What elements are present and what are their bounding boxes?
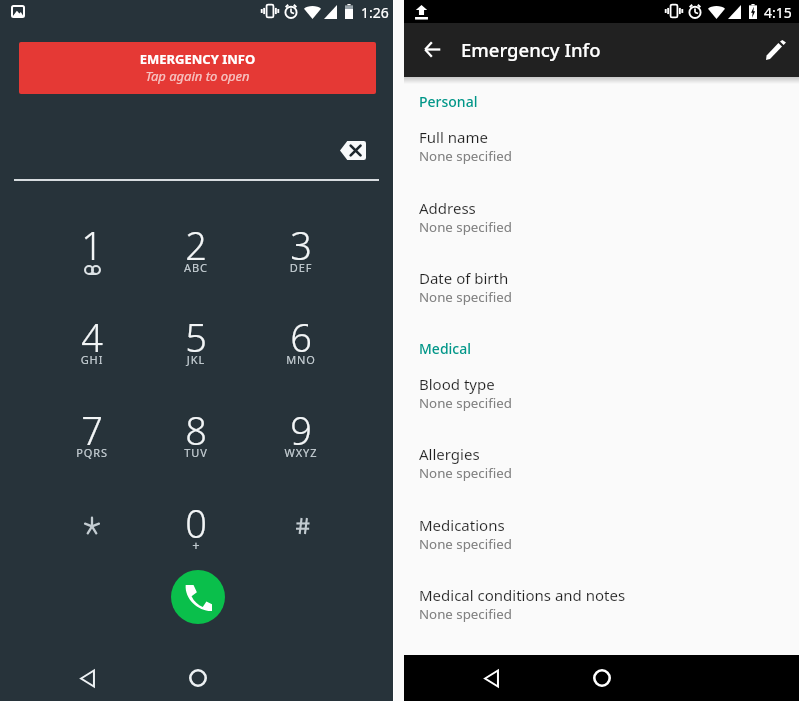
staticText: 0 (151, 497, 241, 549)
staticText: None specified (419, 218, 512, 236)
staticText: ABC (151, 260, 241, 275)
button[interactable]: 2 (151, 219, 241, 305)
staticText: 7 (47, 404, 137, 456)
button[interactable]: Medical conditions and notes (404, 585, 799, 645)
staticText: Date of birth (419, 268, 509, 288)
staticText: WXYZ (256, 445, 346, 460)
button[interactable]: Home (176, 656, 220, 700)
button[interactable]: Full name (404, 127, 799, 187)
staticText: Medications (419, 515, 505, 535)
button[interactable]: 4 (47, 311, 137, 397)
staticText: JKL (151, 352, 241, 367)
staticText: Emergency Info (461, 37, 601, 62)
staticText: Medical (419, 339, 472, 358)
button[interactable]: Star (47, 497, 137, 583)
staticText: 2 (151, 219, 241, 271)
button[interactable]: 8 (151, 404, 241, 490)
staticText: None specified (419, 464, 512, 482)
staticText: Personal (419, 92, 478, 111)
staticText: 1:26 (361, 3, 389, 22)
staticText: Full name (419, 127, 488, 147)
staticText: None specified (419, 535, 512, 553)
staticText: 4 (47, 311, 137, 363)
button[interactable]: Backspace (333, 130, 373, 170)
staticText: Tap again to open (19, 67, 376, 85)
staticText: + (151, 536, 241, 554)
button[interactable]: Back (469, 656, 513, 700)
button[interactable]: Allergies (404, 444, 799, 504)
button[interactable]: EMERGENCY INFO (19, 42, 376, 94)
staticText: Allergies (419, 444, 480, 464)
button[interactable]: Edit (754, 28, 798, 72)
staticText: 1 (47, 219, 137, 271)
staticText: None specified (419, 288, 512, 306)
staticText: DEF (256, 260, 346, 275)
button[interactable]: Back (65, 656, 109, 700)
button[interactable]: 1 (47, 219, 137, 305)
button[interactable]: Home (580, 656, 624, 700)
button[interactable]: 6 (256, 311, 346, 397)
staticText: None specified (419, 394, 512, 412)
staticText: 5 (151, 311, 241, 363)
button[interactable]: Medications (404, 515, 799, 575)
button[interactable]: 9 (256, 404, 346, 490)
staticText: 6 (256, 311, 346, 363)
button[interactable]: Pound (256, 497, 346, 583)
staticText: Address (419, 198, 476, 218)
staticText: None specified (419, 605, 512, 623)
staticText: PQRS (47, 445, 137, 460)
button[interactable]: 3 (256, 219, 346, 305)
staticText: Medical conditions and notes (419, 585, 626, 605)
staticText: GHI (47, 352, 137, 367)
staticText: None specified (419, 147, 512, 165)
staticText: TUV (151, 445, 241, 460)
button[interactable]: Address (404, 198, 799, 258)
button[interactable]: Call (171, 570, 225, 624)
staticText: 9 (256, 404, 346, 456)
staticText: MNO (256, 352, 346, 367)
staticText: EMERGENCY INFO (19, 50, 376, 68)
button[interactable]: 5 (151, 311, 241, 397)
staticText: 4:15 (764, 3, 792, 22)
button[interactable]: 7 (47, 404, 137, 490)
button[interactable]: Date of birth (404, 268, 799, 328)
staticText: Blood type (419, 374, 495, 394)
staticText: 8 (151, 404, 241, 456)
button[interactable]: 0 (151, 497, 241, 583)
button[interactable]: Blood type (404, 374, 799, 434)
staticText: 3 (256, 219, 346, 271)
button[interactable]: Back (410, 27, 454, 71)
